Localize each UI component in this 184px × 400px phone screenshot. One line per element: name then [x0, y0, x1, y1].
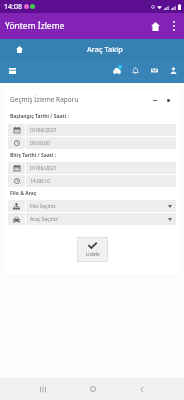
staticText: Yöntem İzleme: [5, 20, 65, 32]
button[interactable]: More options: [166, 18, 182, 34]
button[interactable]: 01/06/2021: [8, 162, 176, 174]
staticText: Listele: [86, 251, 100, 257]
staticText: Filo Seçiniz: [30, 203, 56, 210]
staticText: 01/06/2021: [30, 127, 57, 134]
button[interactable]: Araç Seçiniz: [8, 213, 176, 225]
button[interactable]: Messages: [146, 62, 163, 79]
button[interactable]: 01/06/2021: [8, 124, 176, 136]
staticText: 14:08:10: [30, 178, 50, 185]
button[interactable]: Notifications: [127, 62, 144, 79]
button[interactable]: Listele: [77, 237, 108, 262]
staticText: Geçmiş İzleme Raporu: [10, 95, 79, 104]
button[interactable]: Filo Seçiniz: [8, 200, 176, 212]
staticText: 14:08: [4, 2, 22, 12]
staticText: Bitiş Tarihi / Saati :: [10, 152, 57, 159]
button[interactable]: 14:08:10: [8, 175, 176, 187]
button[interactable]: Home: [68, 378, 117, 400]
staticText: Araç Seçiniz: [30, 216, 58, 223]
button[interactable]: Menu: [4, 63, 20, 79]
button[interactable]: Close: [161, 93, 175, 107]
button[interactable]: Back: [117, 378, 166, 400]
staticText: 00:00:00: [30, 140, 50, 147]
button[interactable]: Home: [11, 41, 27, 57]
staticText: Filo & Araç: [10, 190, 37, 197]
button[interactable]: Recents: [18, 378, 68, 400]
button[interactable]: Minimize: [149, 94, 161, 106]
button[interactable]: Profile: [165, 62, 182, 79]
button[interactable]: Home: [144, 15, 166, 37]
staticText: 01/06/2021: [30, 165, 57, 172]
staticText: Başlangıç Tarihi / Saati :: [10, 113, 69, 120]
button[interactable]: 00:00:00: [8, 137, 176, 149]
button[interactable]: Vehicles: [108, 62, 125, 79]
staticText: Araç Takip: [87, 44, 123, 54]
